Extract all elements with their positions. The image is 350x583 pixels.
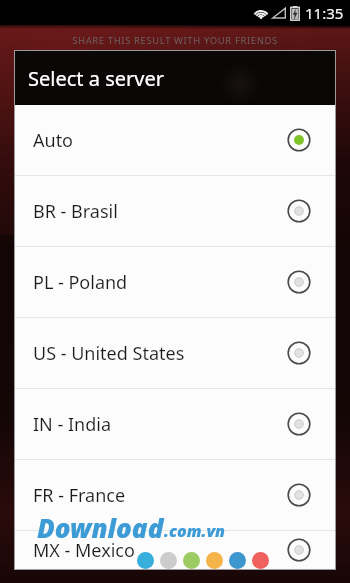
button[interactable]: US - United States [15,318,335,388]
other: Battery charging [290,6,300,21]
staticText: SHARE THIS RESULT WITH YOUR FRIENDS [72,34,278,47]
button[interactable]: BR - Brasil [15,176,335,246]
staticText: MX - Mexico [33,538,286,563]
button[interactable]: FR - France [15,460,335,530]
staticText: PL - Poland [33,270,286,295]
staticText: Download [37,510,164,545]
button[interactable]: Auto [15,105,335,175]
other: Mobile signal [272,7,286,19]
staticText: Auto [33,128,286,153]
button[interactable]: IN - India [15,389,335,459]
staticText: BR - Brasil [33,199,286,224]
staticText: 11:35 [305,3,344,23]
staticText: .com.vn [164,520,226,542]
staticText: Select a server [28,65,164,92]
staticText: IN - India [33,412,286,437]
other: Wi-Fi signal [253,7,269,20]
staticText: FR - France [33,483,286,508]
button[interactable]: PL - Poland [15,247,335,317]
button[interactable]: MX - Mexico [15,531,335,569]
staticText: US - United States [33,341,286,366]
